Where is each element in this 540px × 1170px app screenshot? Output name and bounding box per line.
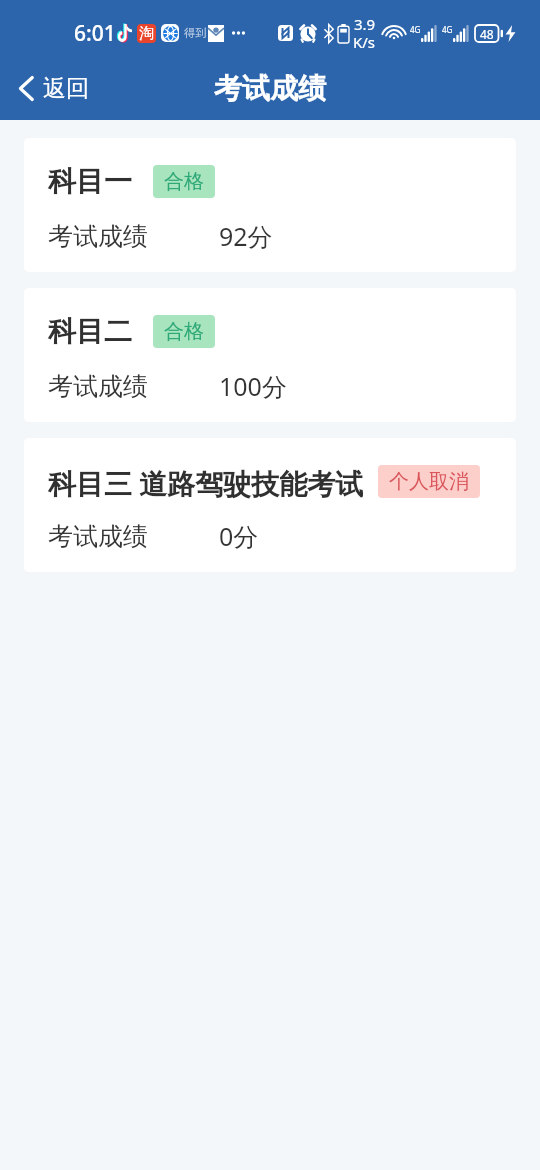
staticText: 100分 — [219, 369, 287, 403]
staticText: 考试成绩 — [48, 521, 148, 552]
staticText: 92分 — [219, 219, 273, 253]
staticText: 0分 — [219, 519, 259, 553]
staticText: 返回 — [43, 74, 89, 103]
staticText: 4G — [410, 24, 421, 35]
staticText: 考试成绩 — [48, 221, 148, 252]
staticText: 个人取消 — [389, 469, 469, 494]
staticText: 4G — [442, 24, 453, 35]
staticText: 考试成绩 — [48, 371, 148, 402]
staticText: 科目二 — [48, 314, 132, 349]
button[interactable]: 科目一 — [24, 138, 516, 272]
staticText: 科目三 道路驾驶技能考试 — [48, 464, 364, 499]
staticText: 48 — [480, 26, 494, 42]
button[interactable]: 科目二 — [24, 288, 516, 422]
staticText: 得 — [184, 26, 195, 40]
staticText: 考试成绩 — [214, 71, 326, 106]
staticText: 3.9 — [354, 14, 376, 34]
staticText: 到 — [195, 26, 202, 40]
button[interactable]: 科目三 道路驾驶技能考试 — [24, 438, 516, 572]
staticText: 6:01 — [74, 19, 116, 48]
staticText: 合格 — [164, 169, 204, 194]
staticText: 科目一 — [48, 164, 132, 199]
staticText: 合格 — [164, 319, 204, 344]
staticText: K/s — [353, 32, 376, 52]
staticText: 淘 — [139, 24, 154, 43]
button[interactable]: 返回 — [0, 64, 105, 113]
